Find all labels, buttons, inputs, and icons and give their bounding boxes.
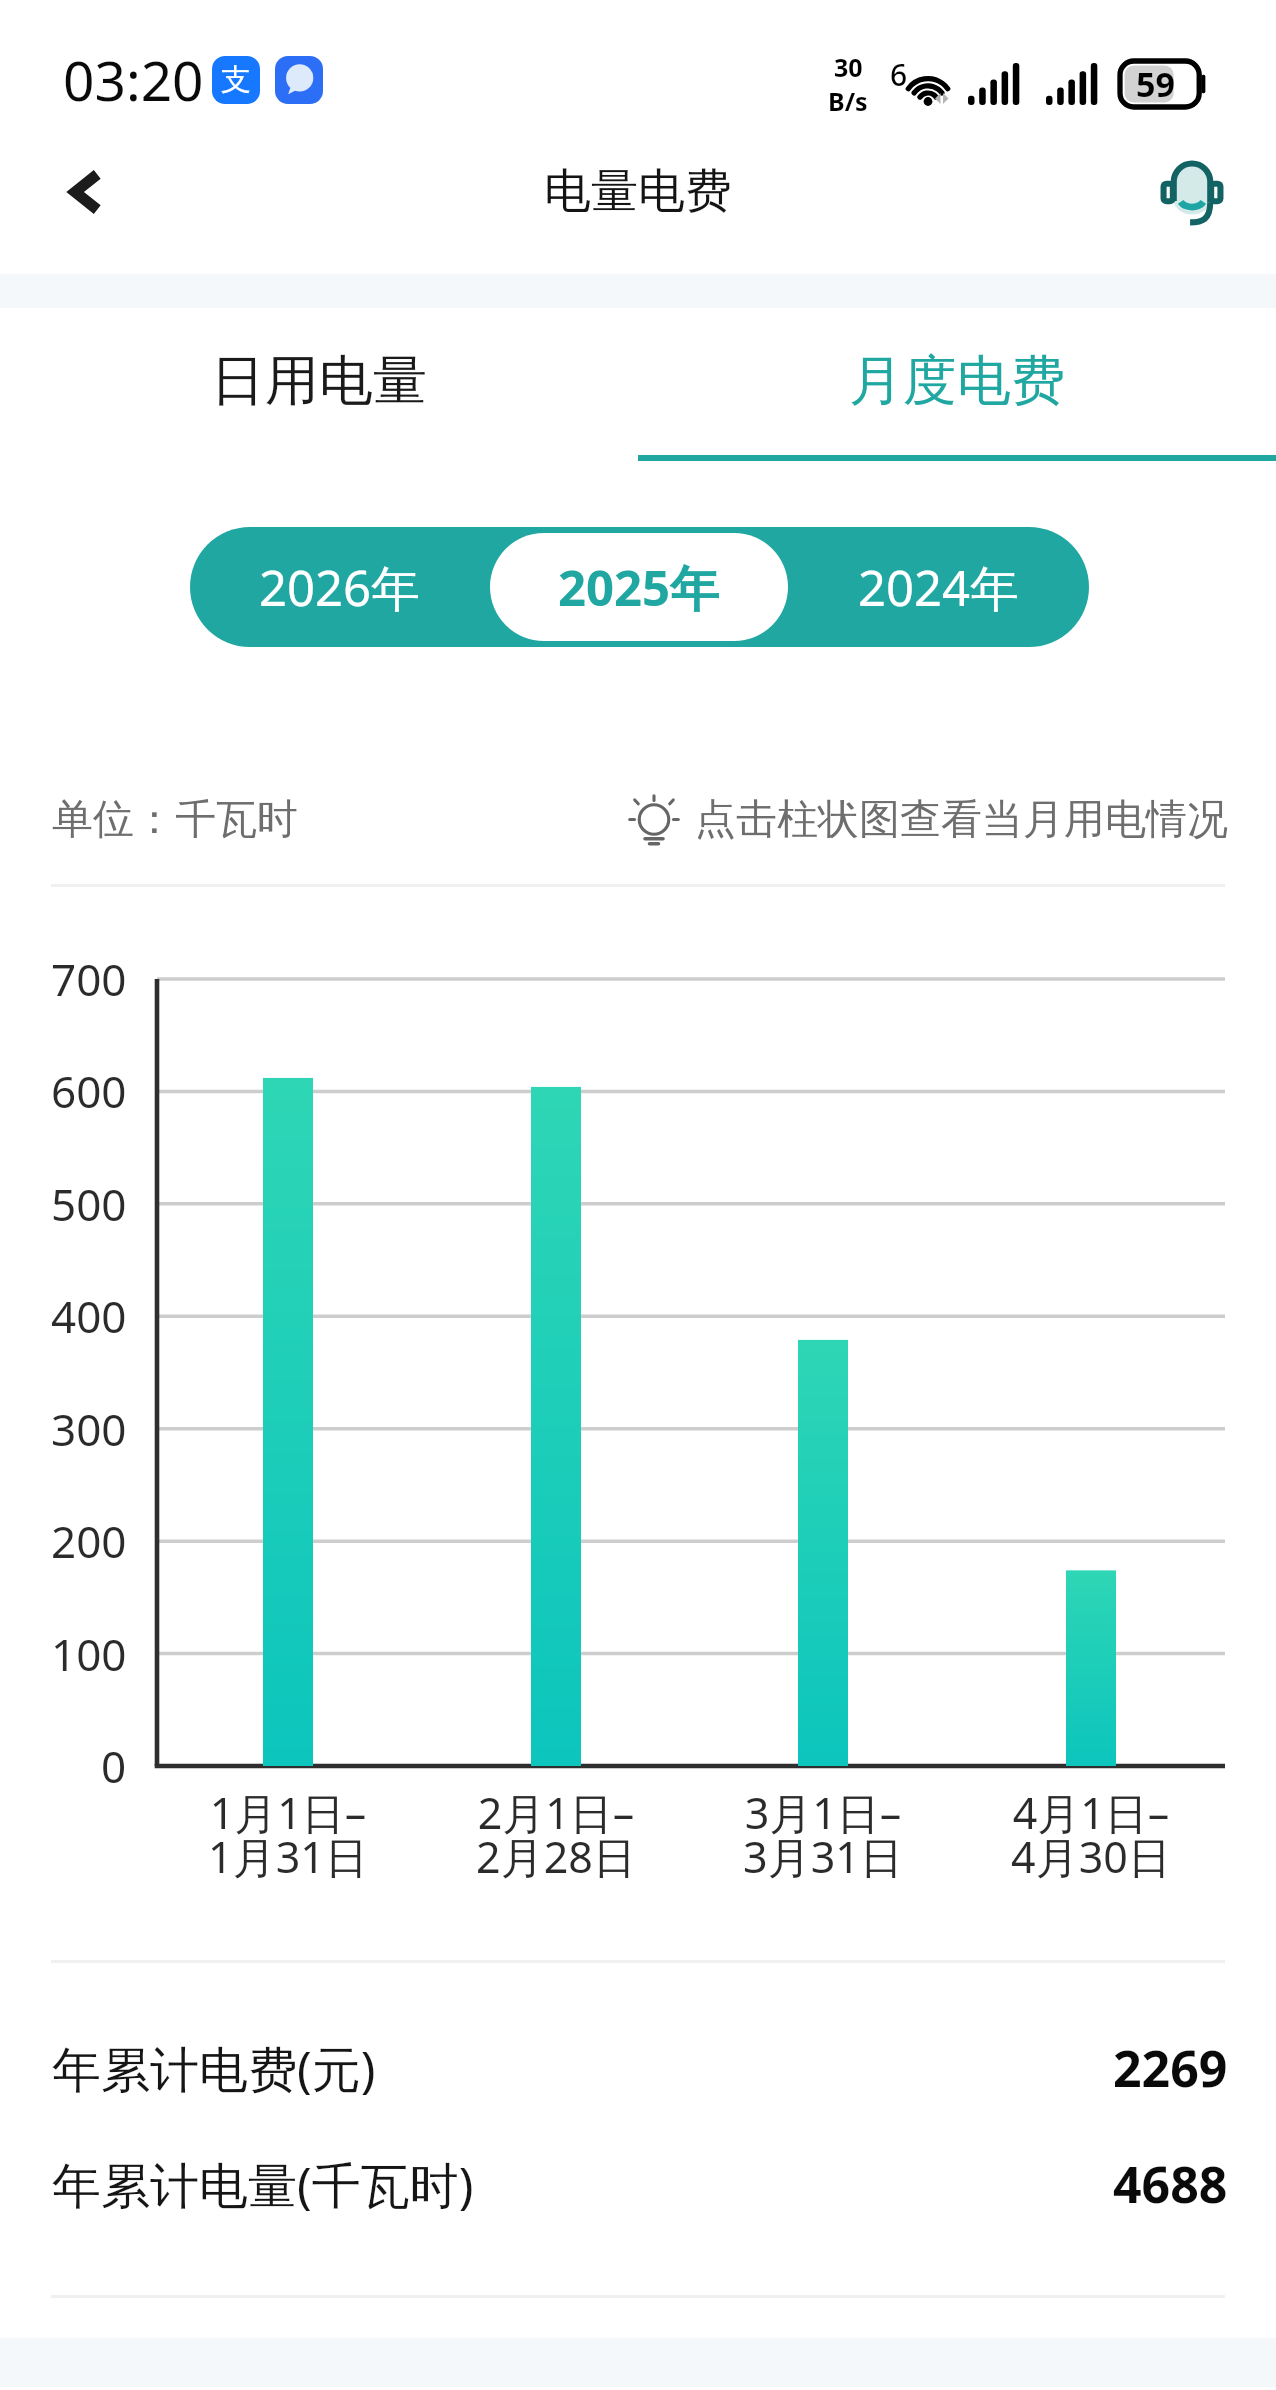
- staticText: 700: [51, 949, 127, 1009]
- button[interactable]: Customer service: [1144, 144, 1240, 240]
- button[interactable]: Bar 3: [761, 979, 885, 1766]
- button[interactable]: 日用电量: [0, 308, 638, 461]
- button[interactable]: Bar 1: [226, 979, 350, 1766]
- staticText: 30: [834, 50, 863, 84]
- button[interactable]: Back: [35, 142, 135, 242]
- staticText: 单位：千瓦时: [52, 794, 298, 846]
- staticText: 1月1日– 1月31日: [208, 1783, 368, 1886]
- staticText: 2269: [1113, 2034, 1228, 2102]
- staticText: 03:20: [63, 42, 204, 117]
- staticText: 400: [51, 1286, 127, 1346]
- staticText: 点击柱状图查看当月用电情况: [695, 794, 1228, 846]
- staticText: 600: [51, 1061, 127, 1121]
- staticText: 2026年: [259, 554, 421, 621]
- staticText: 年累计电量(千瓦时): [52, 2151, 474, 2218]
- staticText: 6: [890, 54, 908, 95]
- staticText: 2025年: [558, 554, 720, 621]
- staticText: 59: [1136, 61, 1175, 107]
- button[interactable]: 年累计电费(元): [0, 2010, 1276, 2126]
- staticText: 4688: [1113, 2150, 1228, 2218]
- staticText: 日用电量: [211, 347, 427, 415]
- button[interactable]: Bar 4: [1029, 979, 1153, 1766]
- button[interactable]: 月度电费: [638, 308, 1276, 461]
- staticText: 100: [51, 1624, 127, 1684]
- staticText: 0: [101, 1736, 127, 1796]
- staticText: 300: [51, 1399, 127, 1459]
- button[interactable]: 2025年: [490, 533, 788, 641]
- button[interactable]: 2024年: [790, 533, 1088, 641]
- staticText: 月度电费: [849, 347, 1065, 415]
- staticText: 3月1日– 3月31日: [743, 1783, 903, 1886]
- button[interactable]: Bar 2: [494, 979, 618, 1766]
- staticText: 2024年: [858, 554, 1020, 621]
- staticText: 4月1日– 4月30日: [1011, 1783, 1171, 1886]
- staticText: 电量电费: [544, 162, 732, 221]
- staticText: 支: [221, 61, 251, 99]
- staticText: 200: [51, 1511, 127, 1571]
- staticText: 500: [51, 1174, 127, 1234]
- button[interactable]: 年累计电量(千瓦时): [0, 2126, 1276, 2242]
- staticText: 年累计电费(元): [52, 2035, 376, 2102]
- button[interactable]: 2026年: [191, 533, 488, 641]
- staticText: 2月1日– 2月28日: [476, 1783, 636, 1886]
- staticText: B/s: [828, 84, 868, 118]
